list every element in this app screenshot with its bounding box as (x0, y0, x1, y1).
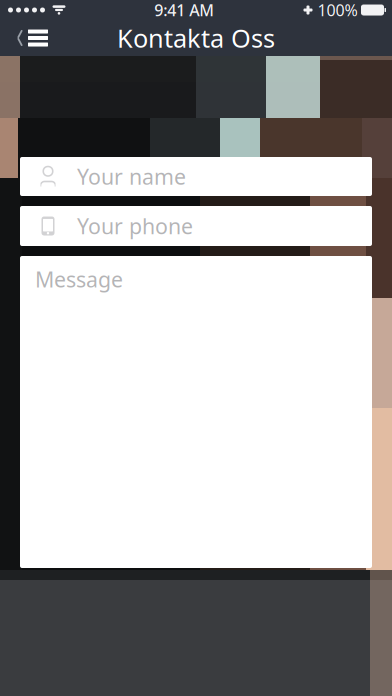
button[interactable]: Menu (0, 23, 56, 53)
button[interactable]: Your name (20, 157, 372, 196)
button[interactable]: Your phone (20, 206, 372, 246)
staticText: Message (35, 265, 123, 293)
staticText: Your name (77, 162, 186, 191)
button[interactable]: Message (20, 256, 372, 568)
staticText: 9:41 AM (154, 0, 214, 21)
staticText: 100% (317, 0, 357, 21)
staticText: Your phone (77, 212, 193, 240)
staticText: Kontakta Oss (117, 21, 275, 55)
